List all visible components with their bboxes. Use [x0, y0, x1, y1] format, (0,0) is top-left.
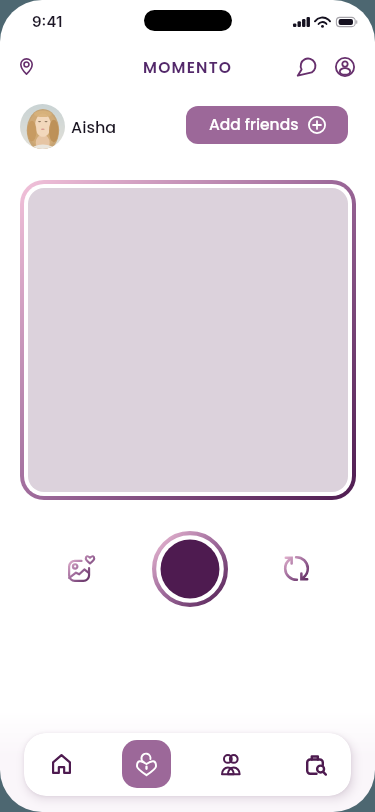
button[interactable]: Discover	[293, 742, 339, 788]
button[interactable]: Your profile photo	[20, 104, 65, 149]
button[interactable]: Gallery	[58, 545, 104, 591]
button[interactable]: Messages	[287, 47, 327, 87]
staticText: Add friends	[209, 114, 299, 136]
button[interactable]: Profile	[325, 47, 365, 87]
button[interactable]: Take photo	[152, 531, 228, 607]
staticText: 9:41	[32, 12, 63, 30]
button[interactable]: Friends	[207, 741, 253, 787]
staticText: Aisha	[71, 116, 117, 138]
button[interactable]: Home	[38, 741, 84, 787]
staticText: MOMENTO	[143, 57, 233, 79]
button[interactable]: Memories	[122, 740, 171, 788]
button[interactable]: Add friends	[186, 106, 348, 144]
button[interactable]: Location	[6, 46, 46, 86]
button[interactable]: Flip camera	[273, 545, 319, 591]
